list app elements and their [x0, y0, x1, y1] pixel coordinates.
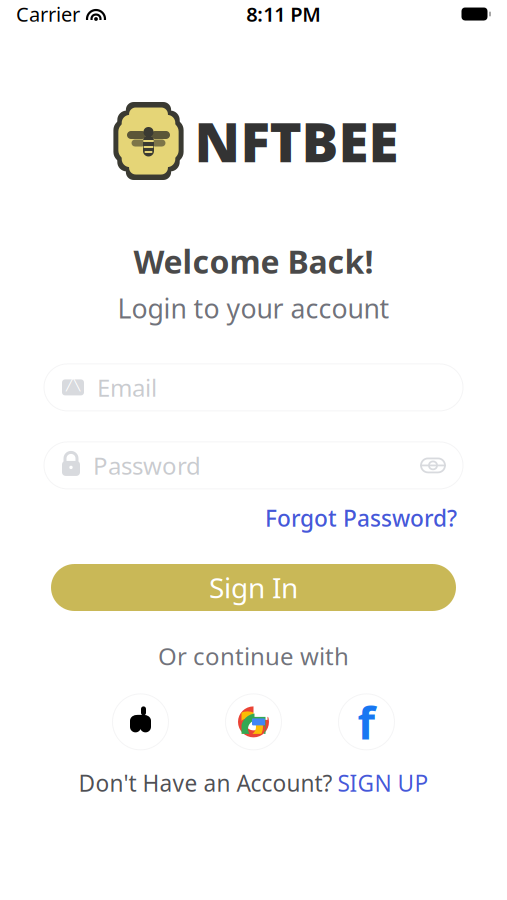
staticText: f [357, 692, 375, 752]
staticText: Sign In [209, 569, 298, 606]
staticText: Carrier [16, 1, 80, 27]
staticText: Login to your account [117, 290, 389, 326]
button[interactable]: Forgot Password? [265, 503, 457, 533]
staticText: Or continue with [158, 640, 349, 672]
staticText: 8:11 PM [246, 1, 321, 27]
staticText: NFTBEE [194, 105, 398, 177]
staticText: Forgot Password? [265, 503, 457, 533]
button[interactable]: Sign In [51, 564, 456, 611]
staticText: Email [97, 371, 157, 403]
button[interactable]: Sign in with Apple [109, 691, 171, 753]
staticText: ╱╲ [66, 378, 80, 391]
staticText: Password [93, 449, 201, 481]
button[interactable]: Sign in with Google [222, 691, 284, 753]
button[interactable]: Sign in with Facebook [335, 691, 397, 753]
button[interactable]: Don't Have an Account? [78, 768, 428, 798]
staticText: Don't Have an Account? [78, 768, 332, 798]
staticText: SIGN UP [337, 768, 428, 798]
staticText: Welcome Back! [133, 240, 373, 282]
